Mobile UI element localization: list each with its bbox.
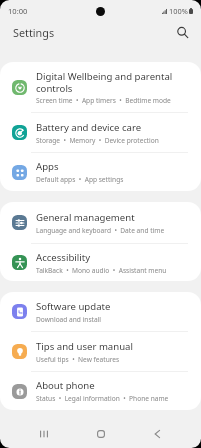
staticText: Digital Wellbeing and parental controls [36,70,173,94]
staticText: Battery and device care [36,121,142,134]
staticText: About phone [36,379,95,392]
button[interactable]: Back [145,422,169,446]
button[interactable]: Search [171,21,195,45]
staticText: Settings [13,25,55,40]
staticText: Storage • Memory • Device protection [36,136,159,145]
button[interactable]: Tips and user manual [0,332,201,371]
button[interactable]: Software update [0,292,201,331]
staticText: TalkBack • Mono audio • Assistant menu [36,266,167,275]
button[interactable]: Recents [32,422,56,446]
staticText: Default apps • App settings [36,175,124,184]
staticText: 100% [169,6,188,16]
button[interactable]: Digital Wellbeing and parental controls [0,62,201,112]
staticText: Download and install [36,315,102,324]
staticText: Language and keyboard • Date and time [36,226,165,235]
staticText: Apps [36,160,59,173]
button[interactable]: About phone [0,372,201,410]
staticText: Tips and user manual [36,340,133,353]
button[interactable]: Home [89,422,113,446]
staticText: Accessibility [36,251,91,264]
staticText: Useful tips • New features [36,355,120,364]
staticText: Status • Legal information • Phone name [36,394,169,403]
button[interactable]: General management [0,202,201,243]
button[interactable]: Apps [0,153,201,191]
staticText: Screen time • App timers • Bedtime mode [36,96,171,105]
staticText: General management [36,211,135,224]
staticText: 10:00 [8,6,28,16]
button[interactable]: Accessibility [0,244,201,281]
staticText: Software update [36,300,111,313]
button[interactable]: Battery and device care [0,113,201,152]
